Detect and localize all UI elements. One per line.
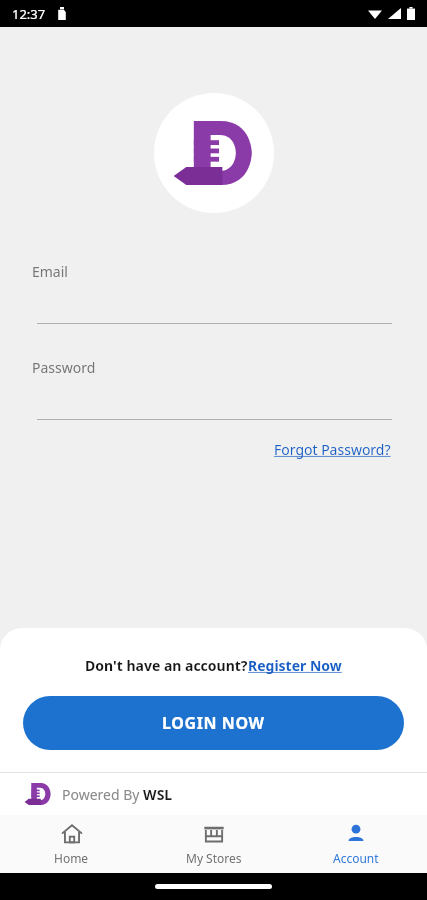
staticText: Account xyxy=(333,850,379,866)
staticText: LOGIN NOW xyxy=(162,712,265,734)
staticText: My Stores xyxy=(186,850,242,866)
staticText: Email xyxy=(32,262,68,281)
button[interactable]: Register Now xyxy=(248,656,342,675)
button[interactable]: Home xyxy=(0,815,143,873)
other: Home xyxy=(61,823,83,845)
button[interactable]: Account xyxy=(285,815,427,873)
staticText: Forgot Password? xyxy=(274,440,391,459)
staticText: Register Now xyxy=(248,656,342,675)
staticText: Powered By WSL xyxy=(62,785,173,804)
other: My Stores xyxy=(203,823,225,845)
staticText: Don't have an account? xyxy=(85,656,248,675)
button[interactable]: My Stores xyxy=(143,815,285,873)
button[interactable]: LOGIN NOW xyxy=(23,696,404,750)
staticText: 12:37 xyxy=(12,5,46,23)
other: Account xyxy=(345,823,367,845)
staticText: Home xyxy=(54,850,89,866)
button[interactable]: Forgot Password? xyxy=(270,436,395,463)
staticText: Password xyxy=(32,358,96,377)
